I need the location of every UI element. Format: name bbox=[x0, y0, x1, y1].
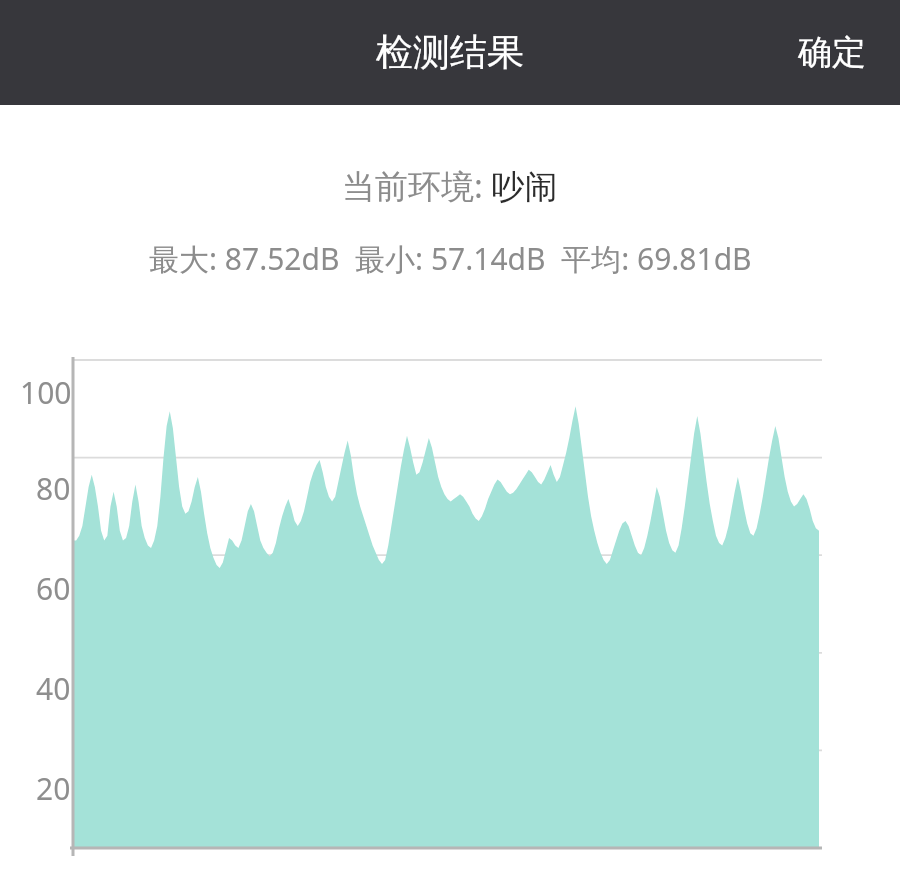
staticText: 80 bbox=[36, 468, 71, 509]
staticText: 20 bbox=[36, 768, 71, 809]
staticText: 最大: 87.52dB 最小: 57.14dB 平均: 69.81dB bbox=[149, 238, 752, 279]
button[interactable]: 确定 bbox=[764, 11, 900, 94]
staticText: 60 bbox=[36, 568, 71, 609]
staticText: 100 bbox=[20, 372, 72, 413]
staticText: 当前环境: 吵闹 bbox=[342, 163, 558, 208]
staticText: 40 bbox=[36, 668, 71, 709]
staticText: 确定 bbox=[798, 31, 866, 74]
staticText: 检测结果 bbox=[376, 29, 524, 76]
